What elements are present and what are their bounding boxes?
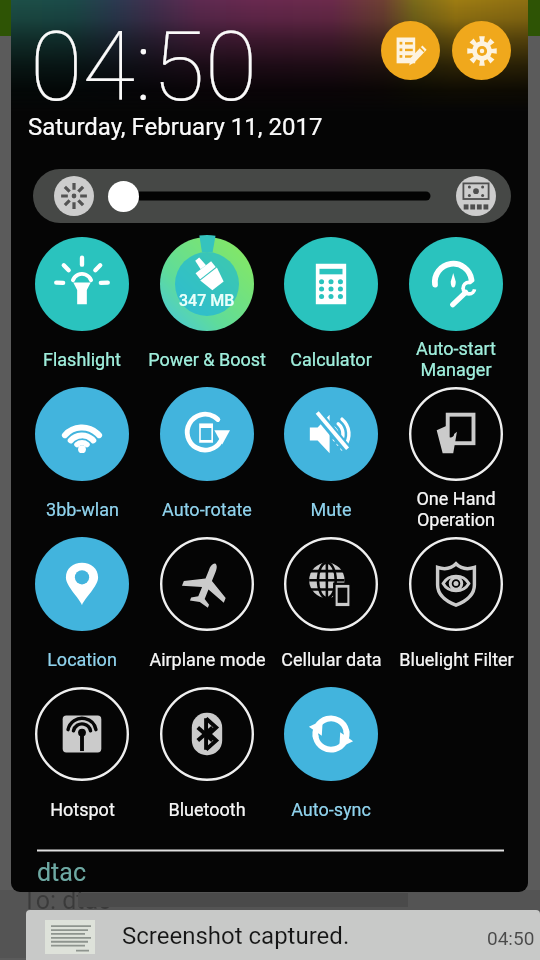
staticText: Bluelight Filter: [399, 649, 514, 670]
staticText: Power & Boost: [148, 349, 266, 370]
button[interactable]: Edit quick settings: [381, 21, 440, 80]
staticText: Cellular data: [281, 649, 382, 670]
button[interactable]: Bluelight Filter: [394, 537, 518, 687]
button[interactable]: Calculator: [269, 237, 393, 387]
staticText: Airplane mode: [149, 649, 266, 670]
staticText: dtac: [37, 858, 86, 887]
button[interactable]: Settings: [452, 21, 511, 80]
button[interactable]: Auto-sync: [269, 687, 393, 837]
button[interactable]: Brightness: [54, 176, 94, 216]
staticText: Mute: [310, 499, 352, 520]
staticText: Hotspot: [50, 799, 115, 820]
staticText: Flashlight: [43, 349, 121, 370]
button[interactable]: Hotspot: [20, 687, 144, 837]
button[interactable]: 3bb-wlan: [20, 387, 144, 537]
staticText: 04:50: [487, 927, 535, 949]
staticText: Auto-rotate: [162, 499, 252, 520]
staticText: Auto-sync: [291, 799, 371, 820]
staticText: 347 MB: [179, 291, 235, 310]
staticText: Bluetooth: [168, 799, 246, 820]
button[interactable]: 347 MB: [145, 237, 269, 387]
button[interactable]: Auto-start Manager: [394, 237, 518, 387]
button[interactable]: Bluetooth: [145, 687, 269, 837]
button[interactable]: Cellular data: [269, 537, 393, 687]
staticText: Auto-start Manager: [416, 338, 496, 380]
button[interactable]: Airplane mode: [145, 537, 269, 687]
staticText: Screenshot captured.: [122, 922, 350, 950]
staticText: Saturday, February 11, 2017: [28, 113, 323, 141]
button[interactable]: dtac: [11, 826, 528, 892]
button[interactable]: Mute: [269, 387, 393, 537]
button[interactable]: Location: [20, 537, 144, 687]
staticText: 04:50: [30, 11, 258, 124]
staticText: Calculator: [290, 349, 372, 370]
staticText: To: dtac: [22, 886, 112, 915]
button[interactable]: Screenshot captured.: [26, 910, 540, 960]
staticText: One Hand Operation: [416, 488, 496, 530]
button[interactable]: One Hand Operation: [394, 387, 518, 537]
staticText: 3bb-wlan: [46, 499, 119, 520]
button[interactable]: Auto brightness: [456, 176, 496, 216]
staticText: Location: [47, 649, 117, 670]
button[interactable]: Flashlight: [20, 237, 144, 387]
button[interactable]: Auto-rotate: [145, 387, 269, 537]
